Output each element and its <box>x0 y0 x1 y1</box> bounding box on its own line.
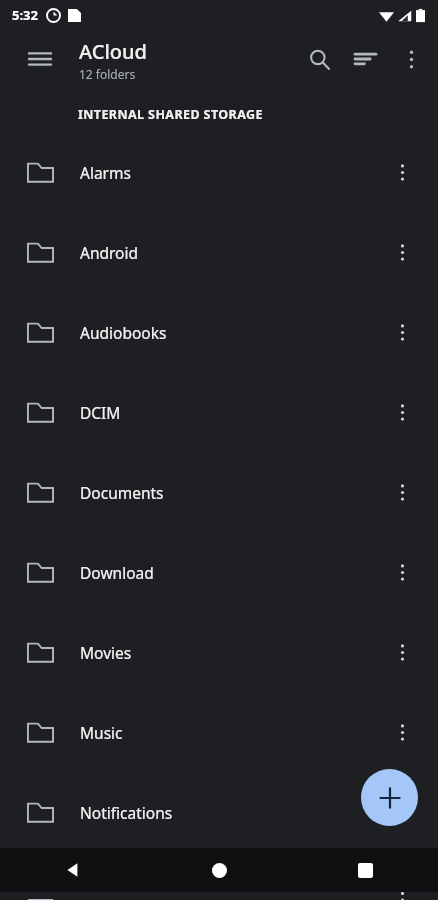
button[interactable]: Documents <box>0 452 438 532</box>
staticText: 12 folders <box>79 66 136 82</box>
button[interactable]: More options for Notifications <box>380 790 424 834</box>
button[interactable]: More options for Movies <box>380 630 424 674</box>
button[interactable]: Movies <box>0 612 438 692</box>
button[interactable]: More options for DCIM <box>380 390 424 434</box>
button[interactable]: More options <box>388 36 434 82</box>
staticText: Android <box>80 242 139 263</box>
staticText: Alarms <box>80 162 131 183</box>
button[interactable]: Android <box>0 212 438 292</box>
button[interactable]: DCIM <box>0 372 438 452</box>
staticText: 5:32 <box>12 6 38 24</box>
button[interactable]: More options for Pictures <box>380 854 424 898</box>
button[interactable]: More options for Audiobooks <box>380 310 424 354</box>
staticText: ACloud <box>79 38 147 65</box>
button[interactable]: Home <box>146 848 292 892</box>
staticText: Notifications <box>80 802 173 823</box>
button[interactable]: Add <box>361 769 418 826</box>
button[interactable]: More options for Music <box>380 710 424 754</box>
button[interactable]: Notifications <box>0 772 438 852</box>
button[interactable]: Download <box>0 532 438 612</box>
button[interactable]: More options for Alarms <box>380 150 424 194</box>
button[interactable]: More options for Android <box>380 230 424 274</box>
staticText: Documents <box>80 482 164 503</box>
button[interactable]: Back <box>0 848 146 892</box>
button[interactable]: More options for Download <box>380 550 424 594</box>
button[interactable]: Pictures <box>0 852 438 900</box>
button[interactable]: Alarms <box>0 132 438 212</box>
button[interactable]: Sort <box>342 36 388 82</box>
staticText: DCIM <box>80 402 121 423</box>
staticText: Movies <box>80 642 132 663</box>
staticText: Audiobooks <box>80 322 167 343</box>
button[interactable]: Open navigation drawer <box>18 37 62 81</box>
button[interactable]: More options for Documents <box>380 470 424 514</box>
staticText: INTERNAL SHARED STORAGE <box>78 106 263 123</box>
button[interactable]: Recent apps <box>292 848 438 892</box>
button[interactable]: Music <box>0 692 438 772</box>
staticText: Download <box>80 562 154 583</box>
staticText: Music <box>80 722 123 743</box>
button[interactable]: Audiobooks <box>0 292 438 372</box>
button[interactable]: Search <box>296 36 342 82</box>
